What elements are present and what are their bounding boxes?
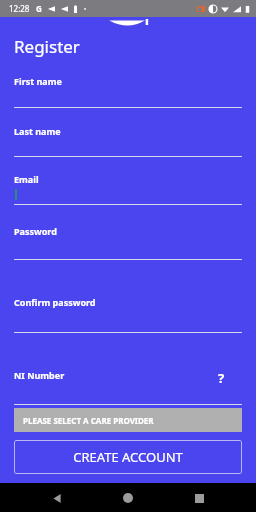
staticText: CREATE ACCOUNT: [73, 448, 183, 466]
staticText: G: [36, 3, 42, 14]
staticText: ?: [218, 369, 225, 387]
staticText: NI Number: [14, 369, 65, 381]
button[interactable]: Back: [46, 487, 68, 509]
staticText: Confirm password: [14, 296, 96, 308]
staticText: Email: [14, 173, 39, 185]
button[interactable]: PLEASE SELECT A CARE PROVIDER: [14, 408, 242, 432]
staticText: PLEASE SELECT A CARE PROVIDER: [23, 415, 154, 426]
button[interactable]: Help about NI Number: [212, 369, 230, 387]
staticText: Last name: [14, 125, 61, 137]
button[interactable]: Recent apps: [188, 487, 210, 509]
staticText: Password: [14, 225, 57, 237]
button[interactable]: CREATE ACCOUNT: [14, 440, 242, 474]
button[interactable]: Home: [117, 487, 139, 509]
staticText: Register: [14, 35, 80, 58]
staticText: First name: [14, 75, 62, 87]
staticText: 12:28: [9, 3, 30, 14]
